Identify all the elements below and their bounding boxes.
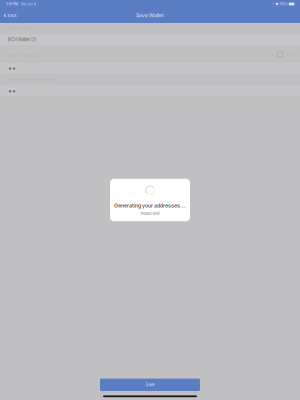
staticText: Save Wallet	[136, 12, 164, 18]
button[interactable]: ••	[0, 85, 300, 96]
staticText: Save	[145, 382, 154, 387]
button[interactable]: Show	[278, 50, 300, 58]
staticText: ••	[8, 86, 16, 95]
button[interactable]: ••	[0, 63, 300, 74]
staticText: ••	[8, 64, 16, 73]
staticText: Generating your addresses...	[114, 202, 186, 209]
staticText: 5:15 PM	[6, 2, 18, 6]
button[interactable]: BCH Wallet (3)	[0, 34, 300, 45]
button[interactable]: Save	[100, 379, 200, 391]
staticText: Back	[7, 13, 16, 18]
staticText: Please wait	[140, 211, 159, 216]
staticText: Sat Jun 8	[18, 2, 36, 6]
staticText: 100%	[279, 2, 289, 6]
button[interactable]: Back	[0, 8, 20, 23]
staticText: BCH Wallet (3)	[8, 37, 37, 42]
